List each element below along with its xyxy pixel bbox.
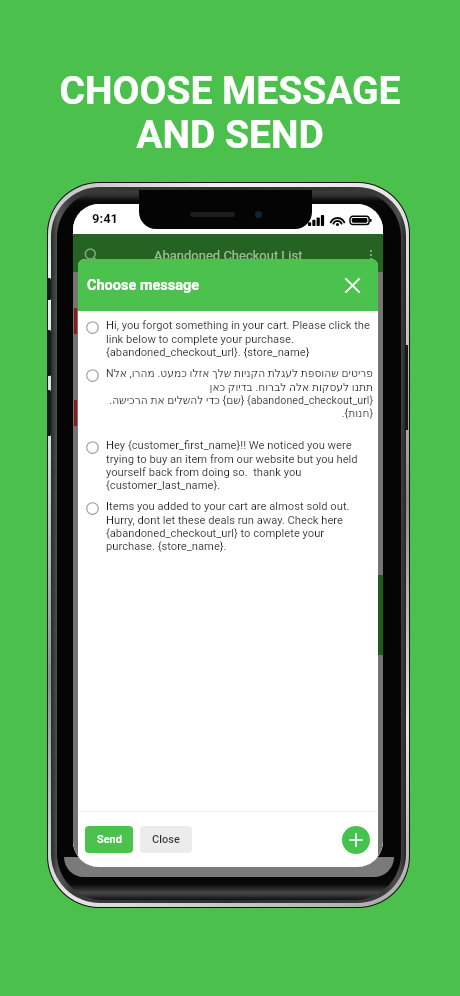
button[interactable]: Add: [342, 826, 370, 854]
staticText: Hey {customer_first_name}!! We noticed y…: [106, 439, 373, 491]
button[interactable]: פריטים שהוספת לעגלת הקניות שלך אזלו כמעט…: [78, 363, 378, 435]
button[interactable]: Close dialog: [338, 271, 366, 299]
staticText: AND SEND: [136, 112, 324, 158]
staticText: Hi, you forgot something in your cart. P…: [106, 319, 373, 358]
staticText: Items you added to your cart are almost …: [106, 500, 373, 552]
button[interactable]: Items you added to your cart are almost …: [78, 496, 378, 557]
staticText: CHOOSE MESSAGE: [59, 68, 401, 114]
staticText: 9:41: [92, 211, 119, 226]
staticText: פריטים שהוספת לעגלת הקניות שלך אזלו כמעט…: [106, 367, 373, 419]
staticText: Choose message: [87, 277, 200, 294]
staticText: Close: [152, 833, 180, 846]
staticText: Send: [97, 833, 122, 846]
staticText: Abandoned Checkout List: [154, 248, 303, 263]
button[interactable]: Hi, you forgot something in your cart. P…: [78, 315, 378, 363]
button[interactable]: Close: [140, 826, 192, 853]
button[interactable]: Hey {customer_first_name}!! We noticed y…: [78, 435, 378, 496]
button[interactable]: Send: [85, 826, 133, 853]
button[interactable]: Choose message: [78, 259, 378, 311]
